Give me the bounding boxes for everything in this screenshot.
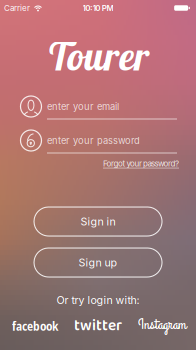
staticText: Carrier [4, 3, 30, 13]
button[interactable]: Sign up [34, 248, 162, 277]
button[interactable]: Password [0, 120, 196, 160]
staticText: enter your password [47, 135, 140, 146]
button[interactable]: Email [0, 86, 196, 126]
button[interactable]: Login with Facebook [12, 318, 58, 334]
button[interactable]: Login with Instagram [138, 315, 186, 335]
staticText: 10:10 PM [82, 3, 113, 13]
button[interactable]: Sign in [34, 207, 162, 236]
staticText: Forgot your password? [103, 159, 179, 168]
staticText: enter your email [47, 101, 119, 112]
staticText: Instagram [138, 315, 186, 335]
staticText: Sign in [80, 215, 115, 228]
staticText: Tourer [47, 32, 149, 80]
button[interactable]: Forgot your password? [103, 159, 179, 168]
staticText: Or try login with: [56, 294, 139, 306]
staticText: facebook [12, 318, 58, 334]
staticText: twitter [74, 314, 122, 338]
staticText: Sign up [78, 256, 117, 269]
button[interactable]: Login with Twitter [74, 314, 122, 338]
